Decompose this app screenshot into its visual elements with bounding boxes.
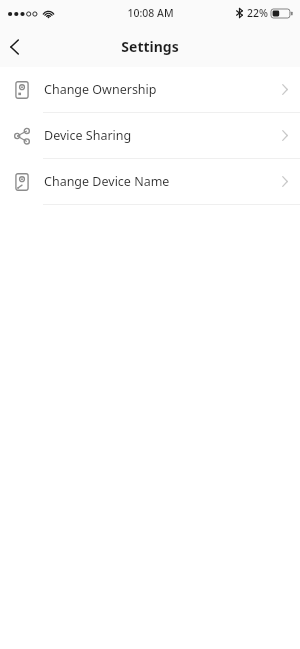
button[interactable]: Change Device Name [0,159,300,204]
button[interactable]: Change Ownership [0,67,300,112]
staticText: 10:08 AM [127,6,174,20]
button[interactable]: Device Sharing [0,113,300,158]
staticText: Device Sharing [44,127,270,144]
staticText: 22% [247,6,268,20]
button[interactable]: Back [0,27,40,67]
staticText: Change Ownership [44,81,270,98]
staticText: Settings [121,37,179,56]
staticText: Change Device Name [44,173,270,190]
